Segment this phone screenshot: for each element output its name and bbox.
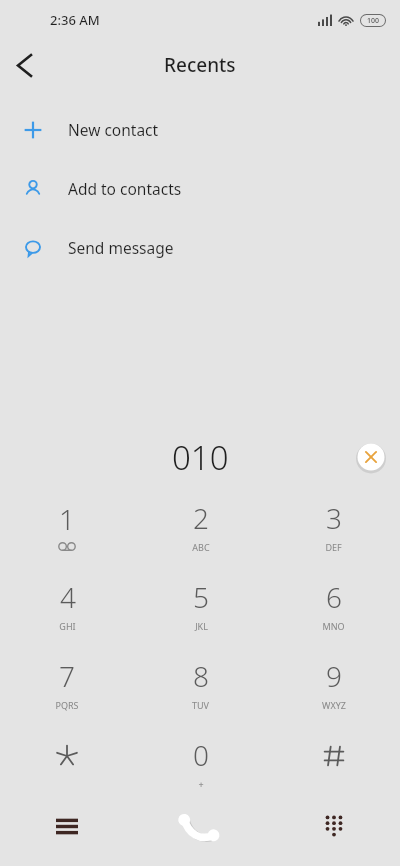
button[interactable]: 1 [0,486,134,565]
button[interactable]: Dialpad [267,786,400,866]
button[interactable]: New contact [0,100,400,159]
button[interactable]: Send message [0,218,400,277]
staticText: 2:36 AM [50,11,100,29]
staticText: Recents [164,52,236,78]
staticText: 4 [60,578,76,616]
button[interactable]: Delete [354,440,388,474]
staticText: + [198,778,204,790]
button[interactable]: Back [0,41,48,89]
staticText: 7 [59,657,75,695]
staticText: 100 [367,16,380,26]
button[interactable] [267,723,400,802]
staticText: Send message [68,237,174,258]
staticText: ABC [192,541,210,553]
button[interactable]: 0 [134,723,267,802]
staticText: New contact [68,119,159,140]
staticText: 9 [326,657,342,695]
staticText: JKL [195,620,208,632]
button[interactable]: 6 [267,565,400,644]
button[interactable]: Add to contacts [0,159,400,218]
staticText: 6 [326,578,342,616]
button[interactable]: 8 [134,644,267,723]
button[interactable] [0,723,134,802]
staticText: TUV [192,699,209,711]
staticText: GHI [59,620,76,632]
button[interactable]: Call [134,786,267,866]
button[interactable]: 2 [134,486,267,565]
staticText: 0 [193,736,209,774]
staticText: 1 [59,500,75,538]
staticText: 010 [172,435,229,480]
staticText: MNO [322,620,345,632]
button[interactable]: 4 [0,565,134,644]
button[interactable]: 9 [267,644,400,723]
staticText: WXYZ [322,699,346,711]
button[interactable]: Menu [0,786,134,866]
button[interactable]: 5 [134,565,267,644]
staticText: 5 [193,578,209,616]
staticText: 3 [326,499,342,537]
staticText: 8 [193,657,209,695]
staticText: PQRS [55,699,79,711]
staticText: DEF [325,541,342,553]
button[interactable]: 3 [267,486,400,565]
staticText: Add to contacts [68,178,182,199]
staticText: 2 [193,499,209,537]
button[interactable]: 7 [0,644,134,723]
